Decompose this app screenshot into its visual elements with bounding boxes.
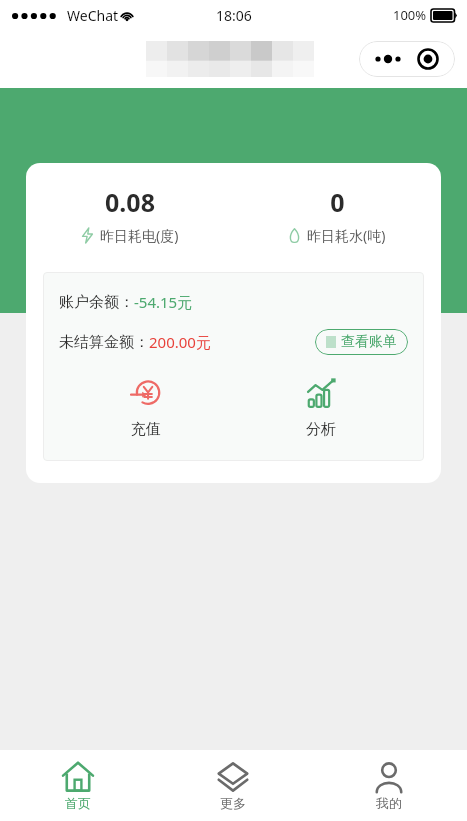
staticText: 分析 [306,420,336,439]
staticText: 我的 [376,795,402,811]
button[interactable]: Menu and close [359,41,455,77]
button[interactable]: 充值 [59,377,233,439]
staticText: 充值 [131,420,161,439]
button[interactable]: 分析 [233,377,408,439]
staticText: 18:06 [216,6,252,25]
button[interactable]: 0.08 [26,185,233,245]
staticText: 首页 [65,795,91,811]
staticText: 0.08 [105,185,155,219]
staticText: 账户余额： [59,293,134,312]
staticText: 未结算金额： [59,333,149,352]
staticText: 0 [330,185,345,219]
button[interactable]: 更多 [155,750,311,821]
staticText: 昨日耗电(度) [100,226,179,245]
button[interactable]: 查看账单 [315,329,408,355]
staticText: 100% [393,6,427,24]
staticText: 200.00元 [149,332,211,352]
staticText: WeChat [67,6,119,25]
staticText: -54.15元 [134,292,193,312]
button[interactable]: 0 [233,185,441,245]
button[interactable]: 我的 [311,750,467,821]
staticText: 更多 [220,795,246,811]
staticText: 查看账单 [341,333,397,351]
staticText: 昨日耗水(吨) [307,226,386,245]
button[interactable]: 首页 [0,750,155,821]
